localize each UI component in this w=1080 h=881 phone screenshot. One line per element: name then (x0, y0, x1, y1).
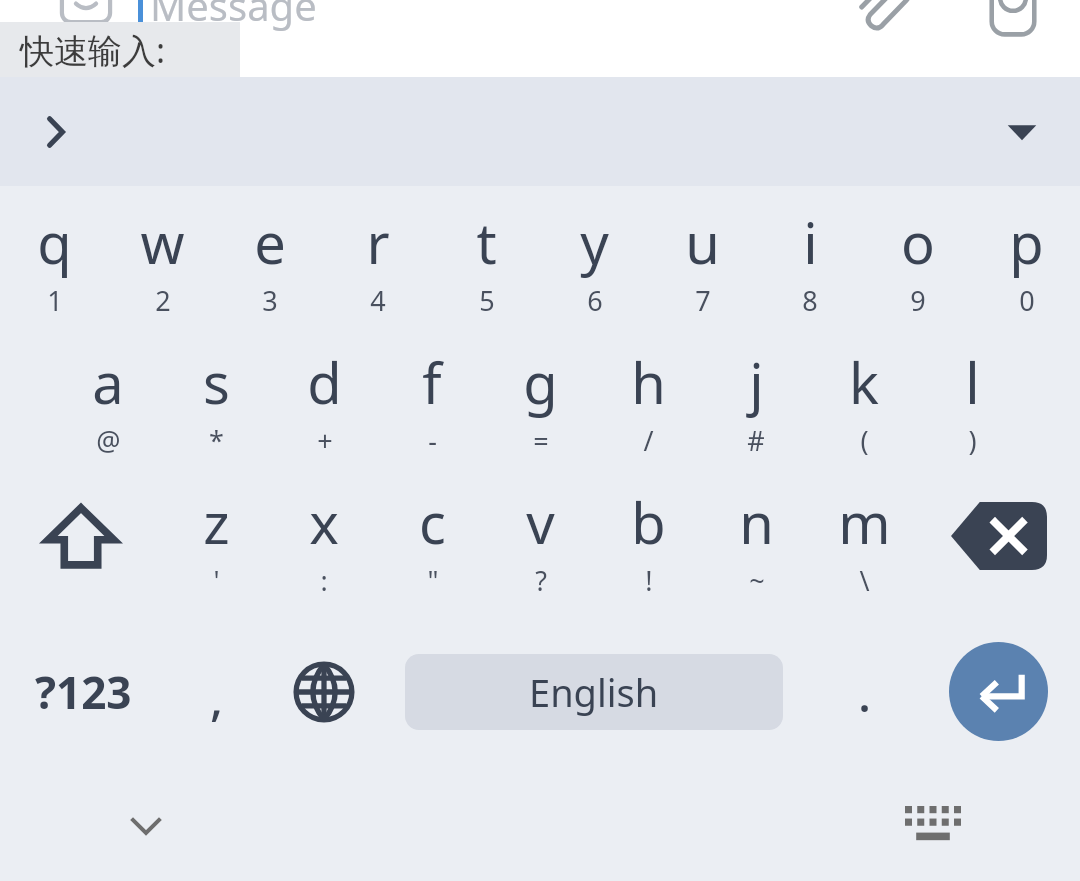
button[interactable]: . (810, 614, 920, 769)
staticText: x (309, 484, 339, 560)
staticText: / (643, 422, 654, 459)
staticText: ) (968, 422, 977, 459)
staticText: 3 (262, 282, 278, 319)
button[interactable]: Enter (949, 642, 1048, 741)
button[interactable]: Camera (975, 0, 1051, 42)
staticText: Message (150, 0, 317, 32)
staticText: y (580, 204, 609, 280)
staticText: ~ (749, 562, 765, 599)
button[interactable]: Expand suggestions (986, 96, 1058, 168)
button[interactable]: m (810, 474, 918, 614)
button[interactable]: x (270, 474, 378, 614)
button[interactable]: o (864, 194, 972, 334)
staticText: m (838, 484, 891, 560)
button[interactable]: y (540, 194, 648, 334)
staticText: " (427, 562, 439, 599)
staticText: w (140, 204, 185, 280)
staticText: + (317, 422, 333, 459)
staticText: o (901, 204, 935, 280)
staticText: v (526, 484, 555, 560)
staticText: - (428, 422, 437, 459)
staticText: ( (860, 422, 869, 459)
staticText: q (37, 204, 72, 280)
staticText: k (849, 344, 879, 420)
button[interactable]: h (594, 334, 702, 474)
button[interactable]: f (378, 334, 486, 474)
staticText: 5 (479, 282, 495, 319)
staticText: i (803, 204, 818, 280)
staticText: f (422, 344, 442, 420)
staticText: ?123 (35, 662, 132, 722)
button[interactable]: Change language (272, 614, 376, 769)
staticText: b (631, 484, 666, 560)
staticText: * (209, 422, 224, 459)
staticText: 快速输入: (20, 27, 166, 73)
button[interactable]: w (108, 194, 216, 334)
staticText: 2 (155, 282, 171, 319)
button[interactable]: a (54, 334, 162, 474)
staticText: 7 (695, 282, 711, 319)
button[interactable]: s (162, 334, 270, 474)
button[interactable]: z (162, 474, 270, 614)
staticText: ' (213, 562, 220, 599)
button[interactable]: v (486, 474, 594, 614)
staticText: c (419, 484, 446, 560)
button[interactable]: k (810, 334, 918, 474)
button[interactable]: Switch keyboard (891, 783, 975, 867)
button[interactable]: ?123 (8, 614, 158, 769)
staticText: e (254, 204, 286, 280)
staticText: p (1009, 204, 1044, 280)
staticText: 4 (370, 282, 386, 319)
staticText: ! (645, 562, 653, 599)
other: Emoji (58, 0, 114, 26)
button[interactable]: j (702, 334, 810, 474)
staticText: . (858, 661, 872, 726)
button[interactable]: English (405, 654, 783, 730)
staticText: \ (859, 562, 870, 599)
staticText: j (749, 344, 764, 420)
button[interactable]: i (756, 194, 864, 334)
staticText: ? (535, 562, 547, 599)
button[interactable]: p (972, 194, 1080, 334)
staticText: g (523, 344, 558, 420)
staticText: : (320, 562, 328, 599)
staticText: English (529, 666, 659, 718)
button[interactable]: Attach (845, 0, 921, 42)
button[interactable]: l (918, 334, 1026, 474)
staticText: l (965, 344, 980, 420)
staticText: r (366, 204, 390, 280)
staticText: a (92, 344, 124, 420)
button[interactable]: u (648, 194, 756, 334)
button[interactable]: c (378, 474, 486, 614)
staticText: z (203, 484, 230, 560)
staticText: n (739, 484, 774, 560)
button[interactable]: 快速输入: (0, 22, 240, 77)
button[interactable]: q (0, 194, 108, 334)
staticText: u (685, 204, 720, 280)
button[interactable]: , (162, 614, 272, 769)
button[interactable]: b (594, 474, 702, 614)
button[interactable]: More suggestions (20, 96, 92, 168)
staticText: , (210, 665, 224, 730)
staticText: @ (96, 422, 121, 459)
button[interactable]: Shift (0, 474, 162, 614)
staticText: h (631, 344, 666, 420)
staticText: 0 (1019, 282, 1035, 319)
staticText: 9 (910, 282, 926, 319)
staticText: d (307, 344, 342, 420)
staticText: 8 (802, 282, 818, 319)
staticText: s (203, 344, 230, 420)
staticText: 6 (587, 282, 603, 319)
staticText: t (476, 204, 497, 280)
button[interactable]: Backspace (918, 474, 1080, 614)
button[interactable]: t (432, 194, 540, 334)
button[interactable]: e (216, 194, 324, 334)
button[interactable]: g (486, 334, 594, 474)
staticText: # (747, 422, 765, 459)
staticText: 1 (47, 282, 63, 319)
button[interactable]: r (324, 194, 432, 334)
button[interactable]: Hide keyboard (104, 783, 188, 867)
staticText: = (533, 422, 549, 459)
button[interactable]: d (270, 334, 378, 474)
button[interactable]: n (702, 474, 810, 614)
